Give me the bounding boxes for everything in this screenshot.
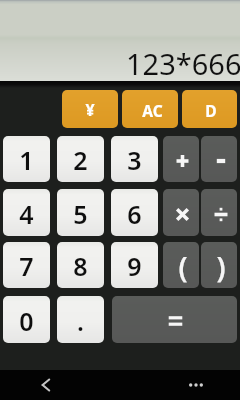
button[interactable]: Equals <box>112 296 237 343</box>
button[interactable]: 3 <box>111 136 158 182</box>
button[interactable]: ( <box>163 242 199 288</box>
button[interactable]: 6 <box>111 189 158 236</box>
button[interactable]: 9 <box>111 242 158 288</box>
button[interactable]: Multiply <box>163 189 199 236</box>
button[interactable]: . <box>57 296 104 343</box>
staticText: 123*666 <box>126 44 240 83</box>
button[interactable]: Back <box>0 370 92 400</box>
button[interactable]: 1 <box>3 136 50 182</box>
staticText: ¥ <box>85 99 95 121</box>
staticText: 4 <box>19 197 34 231</box>
button[interactable]: D <box>182 90 237 128</box>
button[interactable]: Divide <box>201 189 237 236</box>
button[interactable]: More options <box>155 370 240 400</box>
staticText: ( <box>178 248 188 286</box>
staticText: ) <box>216 248 226 286</box>
staticText: 9 <box>127 249 142 283</box>
staticText: AC <box>142 100 163 121</box>
staticText: 8 <box>73 249 88 283</box>
button[interactable]: ) <box>201 242 237 288</box>
staticText: . <box>77 304 84 338</box>
staticText: 5 <box>73 197 88 231</box>
staticText: D <box>205 100 217 121</box>
staticText: 6 <box>127 197 142 231</box>
button[interactable]: 5 <box>57 189 104 236</box>
button[interactable]: ¥ <box>62 90 118 128</box>
staticText: 3 <box>127 143 142 177</box>
staticText: 7 <box>19 249 34 283</box>
button[interactable]: 7 <box>3 242 50 288</box>
staticText: 1 <box>19 143 34 177</box>
button[interactable]: 0 <box>3 296 50 343</box>
button[interactable]: AC <box>122 90 178 128</box>
staticText: 2 <box>73 143 88 177</box>
staticText: 0 <box>19 304 34 338</box>
button[interactable]: Minus <box>201 136 237 182</box>
button[interactable]: Plus <box>163 136 199 182</box>
button[interactable]: 2 <box>57 136 104 182</box>
button[interactable]: 4 <box>3 189 50 236</box>
button[interactable]: 8 <box>57 242 104 288</box>
